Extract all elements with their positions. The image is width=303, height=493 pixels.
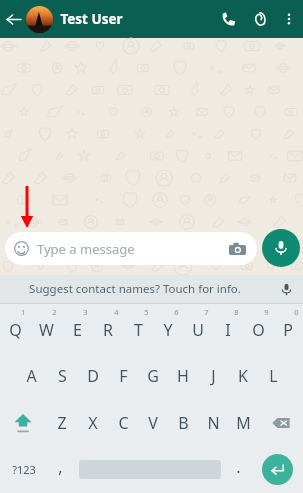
button[interactable]: Space — [74, 446, 225, 493]
staticText: L — [269, 365, 278, 387]
button[interactable]: Shift — [0, 399, 46, 446]
staticText: J — [211, 365, 216, 387]
button[interactable]: ?123 — [0, 446, 47, 493]
staticText: R — [103, 319, 113, 341]
button[interactable]: E — [62, 304, 93, 352]
button[interactable]: D — [78, 352, 108, 399]
staticText: H — [177, 365, 189, 387]
staticText: Suggest contact names? Touch for info. — [29, 281, 241, 297]
staticText: C — [118, 412, 129, 434]
button[interactable]: U — [183, 304, 213, 352]
staticText: 9 — [264, 307, 269, 317]
staticText: N — [207, 412, 220, 434]
staticText: D — [87, 365, 99, 387]
staticText: F — [119, 365, 128, 387]
button[interactable]: T — [123, 304, 153, 352]
button[interactable]: A — [16, 352, 47, 399]
button[interactable]: , — [47, 446, 74, 493]
button[interactable]: Test User — [26, 0, 213, 38]
button[interactable]: Voice message — [262, 229, 300, 267]
button[interactable]: More options — [275, 0, 303, 38]
button[interactable]: O — [243, 304, 273, 352]
button[interactable]: L — [258, 352, 288, 399]
staticText: O — [252, 319, 265, 341]
staticText: V — [148, 412, 158, 434]
button[interactable]: Back — [0, 0, 26, 38]
staticText: M — [236, 412, 251, 434]
button[interactable]: Backspace — [258, 399, 303, 446]
staticText: W — [39, 319, 54, 341]
button[interactable]: J — [198, 352, 228, 399]
staticText: B — [178, 412, 189, 434]
button[interactable]: N — [198, 399, 228, 446]
staticText: S — [58, 365, 67, 387]
staticText: Test User — [60, 10, 123, 28]
button[interactable]: W — [31, 304, 62, 352]
staticText: ?123 — [12, 462, 36, 477]
button[interactable]: . — [225, 446, 252, 493]
button[interactable]: Attach — [243, 0, 275, 38]
button[interactable]: Q — [0, 304, 31, 352]
staticText: I — [225, 319, 231, 341]
staticText: A — [26, 365, 37, 387]
staticText: G — [147, 365, 159, 387]
button[interactable]: Voice input — [269, 275, 303, 303]
staticText: Y — [163, 319, 173, 341]
staticText: , — [58, 456, 63, 478]
button[interactable]: K — [228, 352, 258, 399]
staticText: X — [88, 412, 98, 434]
button[interactable]: B — [168, 399, 198, 446]
button[interactable]: P — [273, 304, 303, 352]
staticText: 2 — [52, 307, 57, 317]
button[interactable]: G — [138, 352, 168, 399]
button[interactable]: F — [108, 352, 138, 399]
button[interactable]: V — [138, 399, 168, 446]
button[interactable]: X — [77, 399, 108, 446]
staticText: Z — [57, 412, 67, 434]
button[interactable]: Y — [153, 304, 183, 352]
staticText: Type a message — [37, 240, 226, 258]
staticText: 7 — [204, 307, 209, 317]
staticText: T — [134, 319, 143, 341]
button[interactable]: Suggest contact names? Touch for info. — [0, 275, 269, 303]
staticText: 4 — [114, 307, 119, 317]
button[interactable]: Call — [213, 0, 243, 38]
button[interactable]: C — [108, 399, 138, 446]
button[interactable]: H — [168, 352, 198, 399]
staticText: Q — [9, 319, 22, 341]
staticText: 3 — [83, 307, 88, 317]
staticText: U — [192, 319, 204, 341]
staticText: P — [283, 319, 293, 341]
button[interactable]: Type a message — [5, 232, 257, 265]
staticText: K — [238, 365, 248, 387]
staticText: 1 — [21, 307, 26, 317]
button[interactable]: Send — [252, 446, 303, 493]
staticText: 0 — [294, 307, 299, 317]
button[interactable]: S — [47, 352, 78, 399]
button[interactable]: Camera — [226, 238, 248, 260]
button[interactable]: R — [93, 304, 123, 352]
staticText: 6 — [174, 307, 179, 317]
button[interactable]: Z — [46, 399, 77, 446]
staticText: 5 — [144, 307, 149, 317]
button[interactable]: M — [228, 399, 258, 446]
staticText: E — [73, 319, 82, 341]
button[interactable]: I — [213, 304, 243, 352]
staticText: . — [236, 456, 241, 478]
staticText: 8 — [234, 307, 239, 317]
